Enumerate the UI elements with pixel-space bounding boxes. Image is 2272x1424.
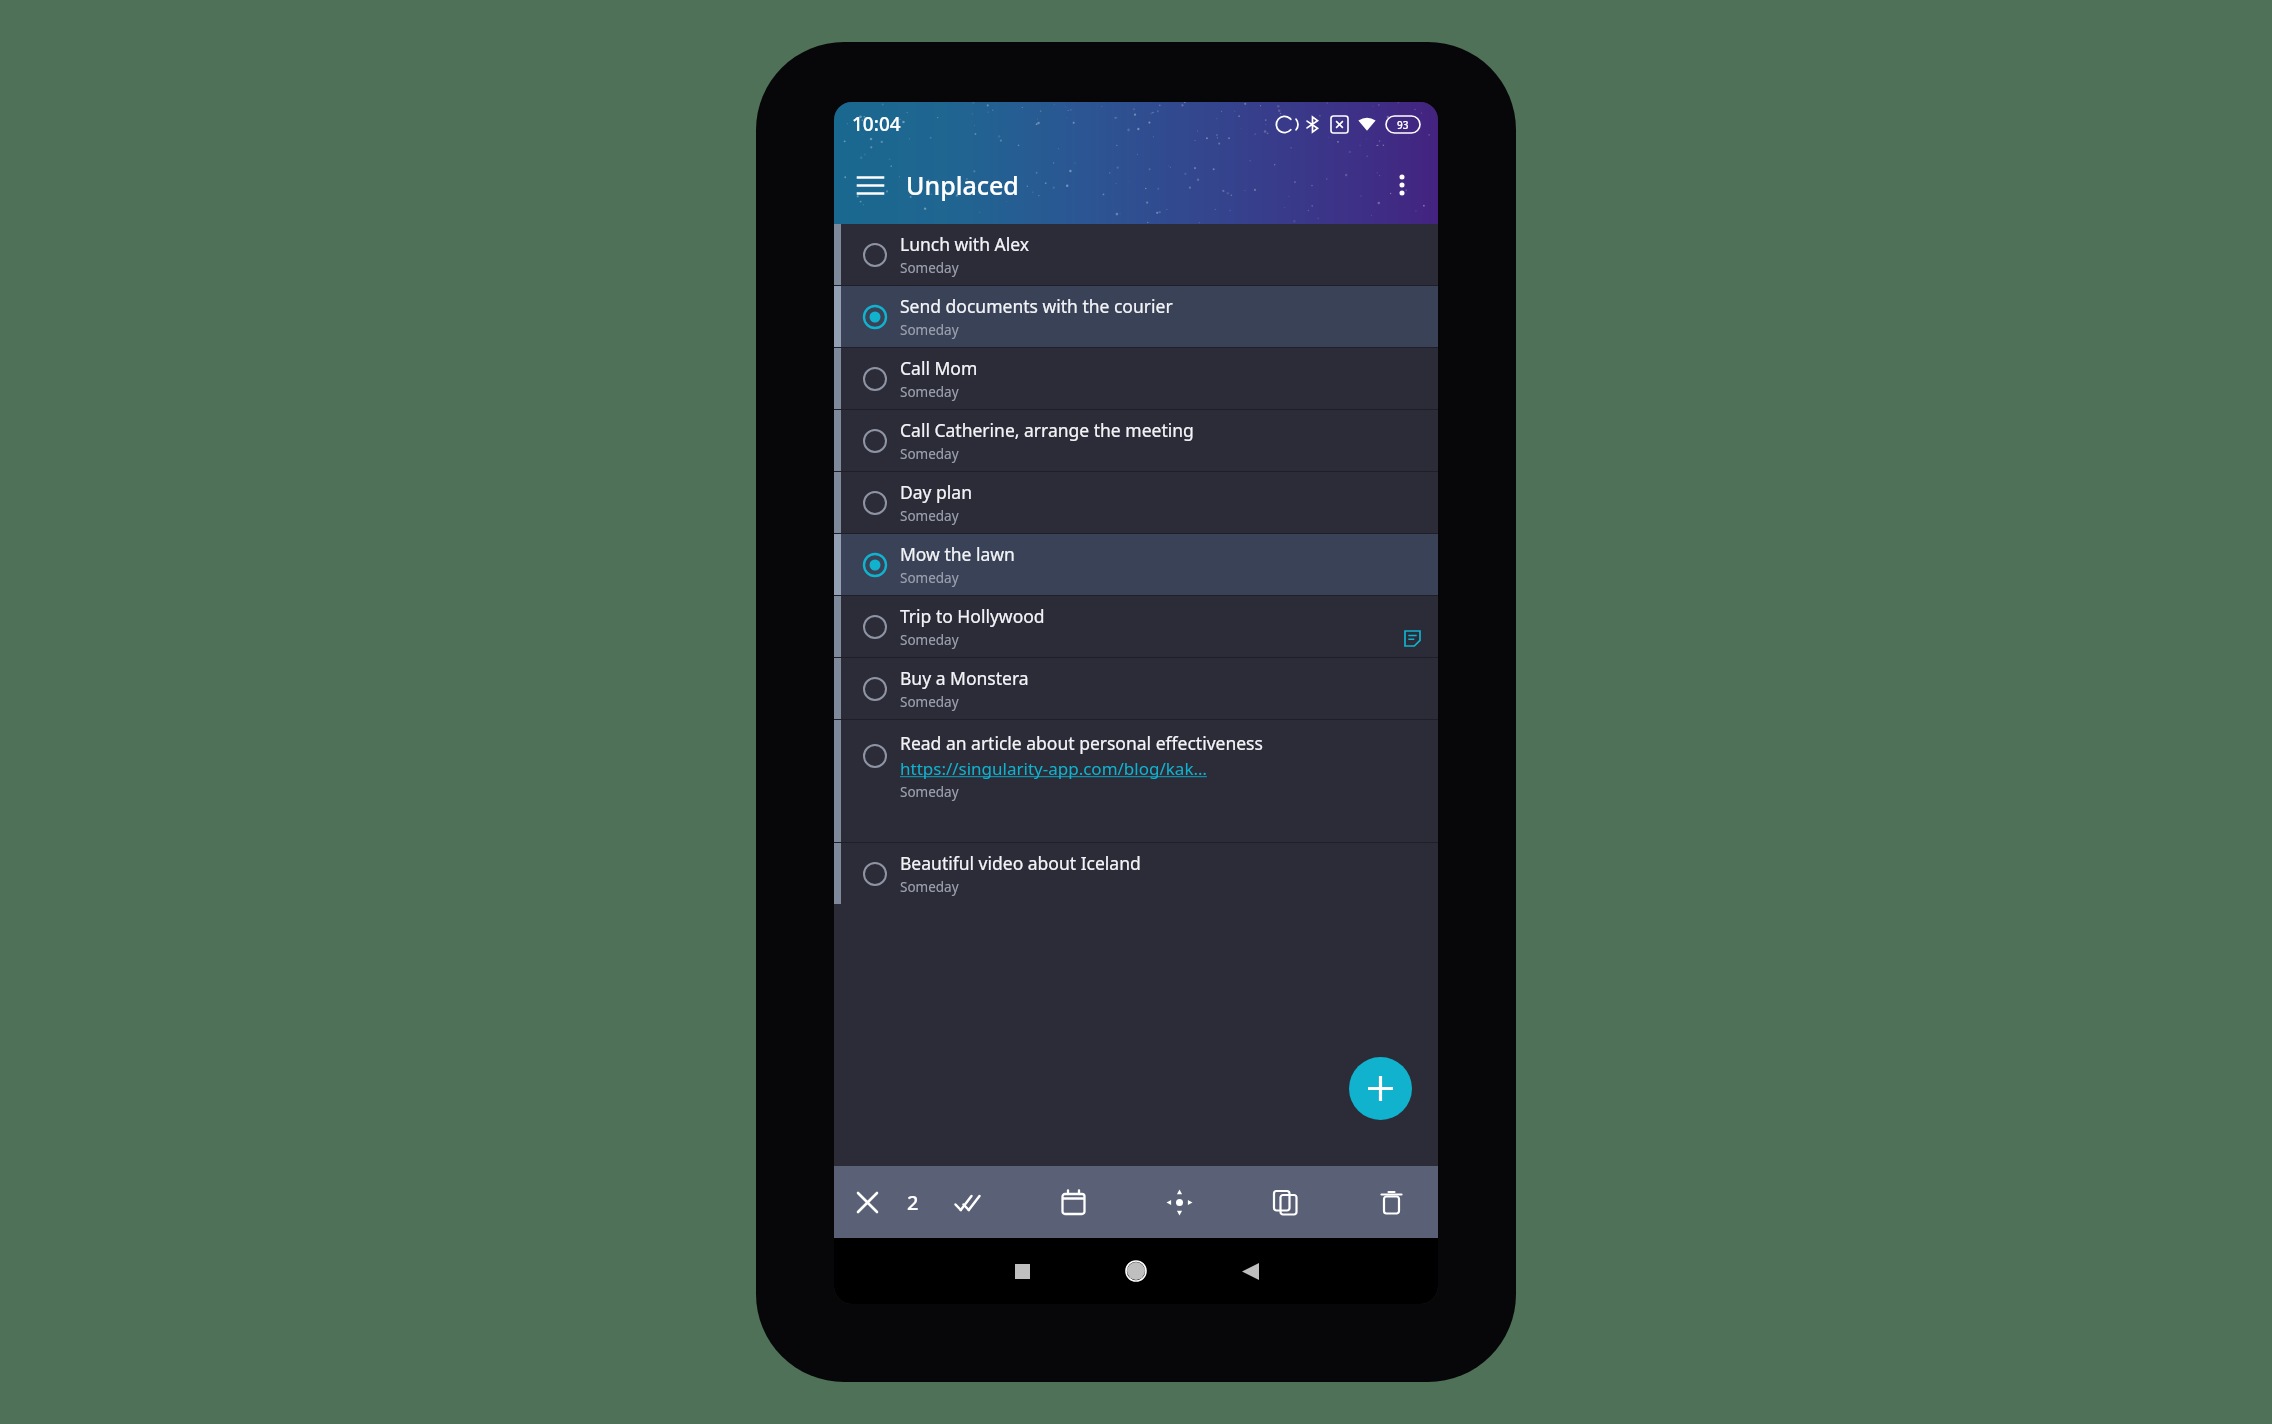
staticText: Day plan xyxy=(900,480,972,504)
staticText: Someday xyxy=(900,259,959,277)
staticText: Call Mom xyxy=(900,356,978,380)
staticText: 10:04 xyxy=(852,111,901,137)
button[interactable]: Copy xyxy=(1262,1179,1308,1225)
staticText: Someday xyxy=(900,445,959,463)
button[interactable]: Toggle task complete xyxy=(855,235,895,275)
button[interactable]: Clear selection xyxy=(844,1179,890,1225)
staticText: 2 xyxy=(907,1189,919,1216)
staticText: Call Catherine, arrange the meeting xyxy=(900,418,1194,442)
button[interactable]: Toggle task complete xyxy=(834,658,1438,719)
button[interactable]: More options xyxy=(1378,161,1426,209)
staticText: Send documents with the courier xyxy=(900,294,1173,318)
button[interactable]: Open navigation menu xyxy=(846,161,894,209)
button[interactable]: Toggle task complete xyxy=(834,348,1438,409)
staticText: Mow the lawn xyxy=(900,542,1015,566)
button[interactable]: Delete xyxy=(1368,1179,1414,1225)
staticText: 93 xyxy=(1397,118,1409,132)
button[interactable]: Back xyxy=(1219,1240,1281,1302)
button[interactable]: Add task xyxy=(1349,1057,1412,1120)
staticText: Someday xyxy=(900,383,959,401)
button[interactable]: Toggle task complete xyxy=(855,854,895,894)
button[interactable]: 2 xyxy=(890,1179,936,1225)
button[interactable]: Home xyxy=(1105,1240,1167,1302)
staticText: Lunch with Alex xyxy=(900,232,1029,256)
button[interactable]: Schedule xyxy=(1050,1179,1096,1225)
button[interactable]: Toggle task complete xyxy=(834,720,1438,842)
staticText: Read an article about personal effective… xyxy=(900,731,1263,755)
button[interactable]: Toggle task complete xyxy=(855,421,895,461)
staticText: Someday xyxy=(900,507,959,525)
button[interactable]: Toggle task complete xyxy=(855,669,895,709)
button[interactable]: Toggle task complete xyxy=(855,297,895,337)
staticText: Beautiful video about Iceland xyxy=(900,851,1141,875)
staticText: Buy a Monstera xyxy=(900,666,1029,690)
button[interactable]: Recent apps xyxy=(991,1240,1053,1302)
button[interactable]: Move xyxy=(1156,1179,1202,1225)
button[interactable]: Toggle task complete xyxy=(855,736,895,776)
button[interactable]: Toggle task complete xyxy=(834,286,1438,347)
button[interactable]: Toggle task complete xyxy=(834,472,1438,533)
staticText: Someday xyxy=(900,783,959,801)
button[interactable]: Toggle task complete xyxy=(834,843,1438,904)
staticText: Someday xyxy=(900,693,959,711)
button[interactable]: Toggle task complete xyxy=(855,607,895,647)
button[interactable]: Toggle task complete xyxy=(834,224,1438,285)
button[interactable]: Toggle task complete xyxy=(855,545,895,585)
staticText: Unplaced xyxy=(906,168,1019,202)
staticText: Someday xyxy=(900,631,959,649)
button[interactable]: Toggle task complete xyxy=(855,359,895,399)
button[interactable]: Toggle task complete xyxy=(834,596,1438,657)
staticText: Trip to Hollywood xyxy=(900,604,1045,628)
button[interactable]: Toggle task complete xyxy=(834,534,1438,595)
button[interactable]: Mark as done xyxy=(944,1179,990,1225)
button[interactable]: Toggle task complete xyxy=(855,483,895,523)
staticText: https://singularity-app.com/blog/kak… xyxy=(900,757,1207,780)
staticText: Someday xyxy=(900,569,959,587)
button[interactable]: Toggle task complete xyxy=(834,410,1438,471)
staticText: Someday xyxy=(900,321,959,339)
staticText: Someday xyxy=(900,878,959,896)
